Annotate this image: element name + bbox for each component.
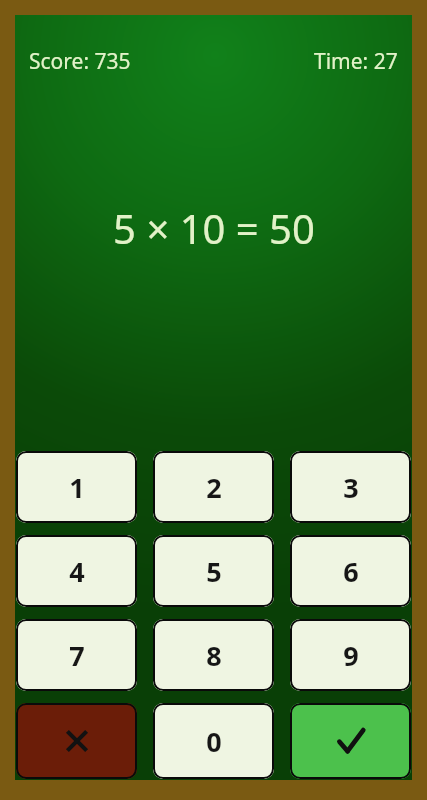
button[interactable]: 7: [16, 619, 137, 691]
staticText: 6: [343, 553, 359, 590]
button[interactable]: 2: [153, 451, 274, 523]
button[interactable]: 9: [290, 619, 411, 691]
staticText: 8: [206, 637, 222, 674]
button[interactable]: 1: [16, 451, 137, 523]
button[interactable]: 6: [290, 535, 411, 607]
staticText: 5 × 10 = 50: [113, 201, 315, 255]
button[interactable]: 0: [153, 703, 274, 779]
staticText: 7: [69, 637, 85, 674]
staticText: 1: [69, 469, 85, 506]
button[interactable]: 3: [290, 451, 411, 523]
button[interactable]: Submit answer: [290, 703, 411, 779]
staticText: 9: [343, 637, 359, 674]
staticText: 2: [206, 469, 222, 506]
button[interactable]: 8: [153, 619, 274, 691]
staticText: Time: 27: [314, 47, 398, 76]
button[interactable]: Clear: [16, 703, 137, 779]
staticText: 3: [343, 469, 359, 506]
staticText: 0: [206, 723, 222, 760]
staticText: Score: 735: [29, 47, 131, 76]
button[interactable]: 4: [16, 535, 137, 607]
staticText: 4: [69, 553, 85, 590]
button[interactable]: 5: [153, 535, 274, 607]
staticText: 5: [206, 553, 222, 590]
